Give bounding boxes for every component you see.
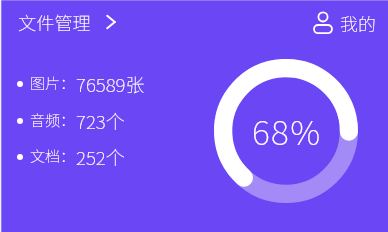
button[interactable]: 音频：	[17, 109, 125, 133]
button[interactable]: 图片：	[17, 72, 145, 96]
staticText: 文件管理	[18, 9, 91, 35]
staticText: 252个	[76, 143, 125, 167]
staticText: 723个	[76, 107, 125, 131]
button[interactable]: My account	[313, 8, 376, 34]
button[interactable]: 文档：	[17, 145, 125, 169]
staticText: 图片：	[30, 72, 76, 94]
staticText: 音频：	[30, 109, 76, 131]
staticText: 76589张	[76, 70, 145, 94]
staticText: 我的	[340, 10, 376, 36]
staticText: 文档：	[30, 145, 76, 167]
button[interactable]: 文件管理	[18, 9, 116, 35]
staticText: 68%	[252, 106, 322, 155]
other: My account	[313, 10, 333, 32]
